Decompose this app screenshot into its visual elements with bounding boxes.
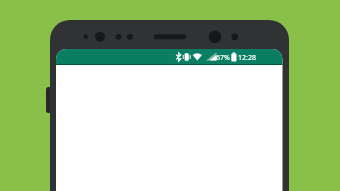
staticText: 67% — [216, 53, 230, 63]
staticText: 12:28 — [238, 53, 256, 63]
